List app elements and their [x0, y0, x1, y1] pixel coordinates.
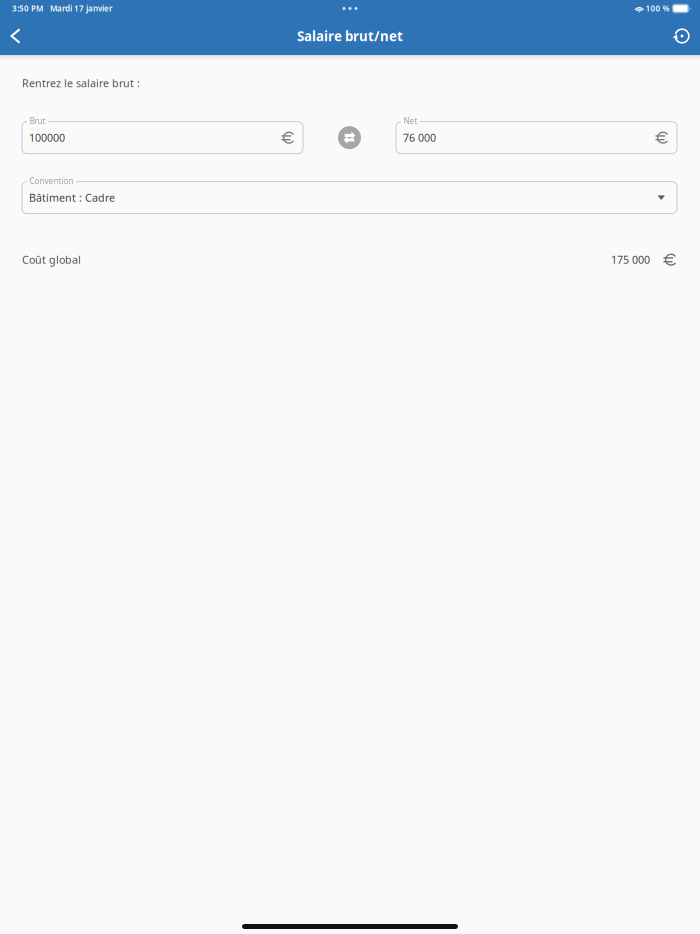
staticText: Rentrez le salaire brut : — [22, 76, 140, 90]
staticText: Salaire brut/net — [297, 27, 403, 45]
button[interactable]: Inverser — [334, 116, 364, 154]
staticText: Net — [403, 116, 417, 126]
staticText: Brut — [29, 116, 45, 126]
button[interactable]: Retour — [1, 17, 31, 55]
staticText: 100000 — [29, 131, 65, 145]
button[interactable]: Historique — [666, 17, 696, 55]
staticText: 3:50 PM — [12, 3, 43, 14]
staticText: Bâtiment : Cadre — [29, 191, 115, 205]
staticText: Mardi 17 janvier — [50, 3, 112, 14]
staticText: Coût global — [22, 253, 81, 267]
staticText: 175 000 — [611, 253, 650, 267]
staticText: Convention — [29, 176, 73, 186]
staticText: 76 000 — [403, 131, 436, 145]
button[interactable]: Bâtiment : Cadre — [0, 176, 700, 214]
staticText: 100 % — [645, 3, 669, 14]
